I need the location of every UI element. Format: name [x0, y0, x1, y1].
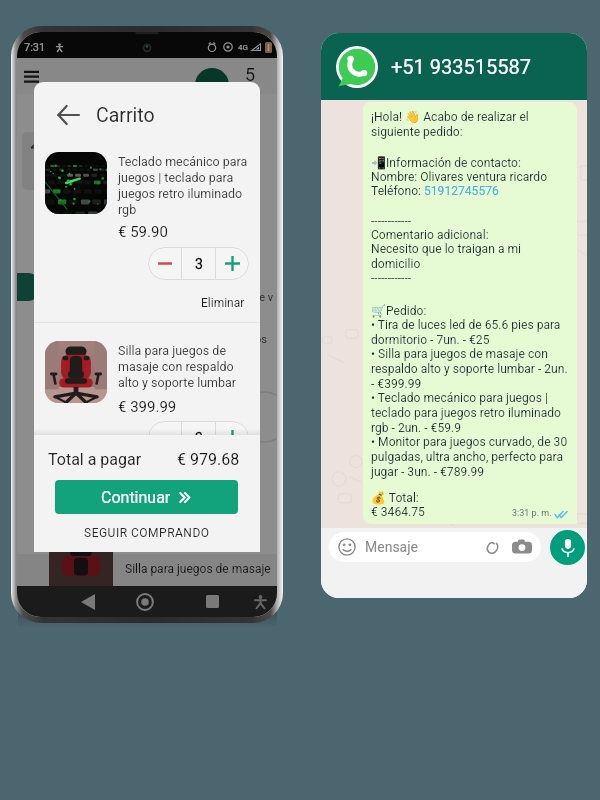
staticText: • Monitor para juegos curvado, de 30 pul… — [371, 435, 568, 479]
staticText: Eliminar — [201, 296, 245, 310]
staticText: ¡Hola! 👋 Acabo de realizar el siguiente … — [371, 110, 568, 139]
staticText: Teléfono: 51912745576 — [371, 184, 499, 198]
staticText: 📲Información de contacto: — [371, 156, 521, 170]
button[interactable]: Continuar — [55, 480, 238, 514]
button[interactable]: Voice message — [550, 530, 585, 565]
staticText: ------------ — [371, 214, 412, 228]
button[interactable]: Decrease quantity — [148, 247, 181, 280]
button[interactable]: Attach — [482, 538, 501, 557]
button[interactable]: Back — [17, 586, 81, 617]
staticText: Teclado mecánico para juegos | teclado p… — [118, 154, 250, 217]
button[interactable]: Recents — [17, 586, 212, 617]
staticText: 3 — [195, 256, 203, 272]
staticText: Carrito — [96, 104, 155, 127]
button[interactable]: Camera — [512, 537, 532, 557]
staticText: Nombre: Olivares ventura ricardo — [371, 170, 548, 184]
button[interactable]: Home — [17, 586, 145, 617]
button[interactable]: SEGUIR COMPRANDO — [34, 520, 260, 546]
staticText: SEGUIR COMPRANDO — [84, 526, 210, 540]
staticText: Continuar — [101, 488, 171, 507]
staticText: € 59.90 — [118, 223, 168, 241]
button[interactable]: Increase quantity — [216, 421, 249, 454]
staticText: 3 — [195, 430, 203, 446]
staticText: Total a pagar — [48, 450, 142, 469]
staticText: € 399.99 — [118, 398, 177, 416]
staticText: Comentario adicional: — [371, 228, 489, 242]
button[interactable]: Decrease quantity — [148, 421, 181, 454]
staticText: 🛒Pedido: — [371, 304, 427, 318]
staticText: 3:31 p. m. — [512, 508, 552, 519]
staticText: Eliminar — [201, 470, 245, 484]
staticText: • Tira de luces led de 65.6 pies para do… — [371, 318, 568, 347]
staticText: Silla para juegos de masaje — [125, 562, 271, 576]
staticText: 7:31 — [24, 41, 46, 54]
staticText: Mensaje — [365, 539, 418, 555]
staticText: 4G — [238, 43, 248, 52]
staticText: • Teclado mecánico para juegos | teclado… — [371, 391, 568, 435]
staticText: os — [255, 333, 267, 346]
staticText: • Silla para juegos de masaje con respal… — [371, 347, 568, 391]
button[interactable]: Eliminar — [198, 294, 248, 312]
button[interactable]: Back — [54, 101, 82, 129]
button[interactable]: Eliminar — [198, 468, 248, 486]
staticText: de v — [253, 291, 274, 304]
button[interactable]: Increase quantity — [216, 247, 249, 280]
staticText: ------------ — [371, 271, 412, 285]
button[interactable]: WhatsApp — [336, 46, 378, 88]
staticText: Silla para juegos de masaje con respaldo… — [118, 343, 250, 390]
staticText: 💰 Total: — [371, 491, 419, 505]
button[interactable]: Mensaje — [329, 532, 541, 562]
staticText: +51 933515587 — [391, 55, 531, 78]
staticText: € 979.68 — [177, 450, 240, 469]
staticText: € 3464.75 — [371, 505, 425, 519]
staticText: 5 — [245, 64, 256, 85]
staticText: Necesito que lo traigan a mi domicilio — [371, 242, 568, 271]
button[interactable]: Accessibility — [17, 586, 260, 617]
